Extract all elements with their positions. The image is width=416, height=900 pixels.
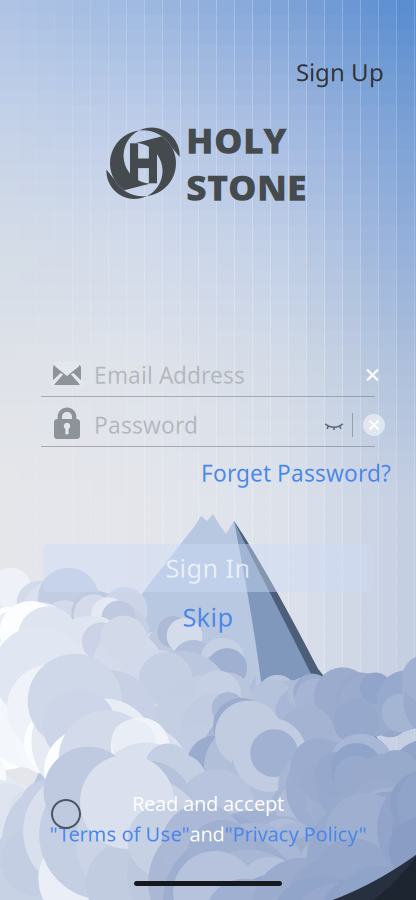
staticText: Email Address	[94, 360, 245, 390]
staticText: Password	[94, 410, 198, 440]
staticText: "Terms of Use"	[49, 821, 189, 847]
staticText: Skip	[182, 600, 233, 634]
button[interactable]: Forget Password?	[216, 455, 376, 491]
staticText: Forget Password?	[201, 458, 391, 488]
button[interactable]: Clear password	[353, 404, 395, 446]
staticText: STONE	[186, 163, 307, 211]
staticText: and	[189, 821, 224, 847]
staticText: "Privacy Policy"	[224, 821, 366, 847]
button[interactable]: Skip	[160, 596, 256, 638]
staticText: HOLY	[186, 116, 287, 164]
staticText: Read and accept	[132, 790, 284, 817]
button[interactable]: "Privacy Policy"	[224, 821, 366, 847]
button[interactable]: Accept terms of use and privacy policy	[42, 790, 90, 838]
button[interactable]: Sign In	[43, 544, 373, 592]
button[interactable]: "Terms of Use"	[49, 821, 189, 847]
staticText: Sign In	[165, 551, 250, 585]
button[interactable]: Clear email address	[356, 358, 389, 391]
button[interactable]: Sign Up	[300, 51, 380, 93]
staticText: Sign Up	[296, 56, 384, 88]
button[interactable]: Show password	[316, 405, 352, 445]
